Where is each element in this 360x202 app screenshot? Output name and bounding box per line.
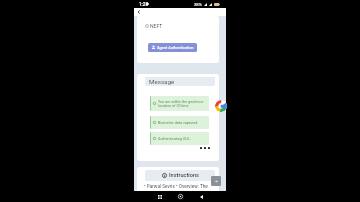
staticText: You are within the geofence	[158, 100, 204, 104]
button[interactable]: Scroll to top	[211, 176, 221, 186]
staticText: Biometric data captured	[158, 121, 198, 125]
staticText: Authenticating VLE...	[158, 137, 193, 141]
button[interactable]: You are within the geofence	[150, 96, 209, 111]
button[interactable]: Home	[176, 192, 185, 201]
staticText: 1:28	[139, 2, 149, 7]
staticText: NEFT	[150, 23, 163, 29]
staticText: • Parwal Sevrix • Overview: The	[144, 184, 208, 190]
button[interactable]: Back	[136, 9, 142, 15]
staticText: Instructions	[169, 172, 199, 179]
button[interactable]: NEFT	[145, 23, 163, 29]
button[interactable]: Instructions	[145, 170, 215, 181]
staticText: Agent Authentication	[157, 45, 194, 50]
button[interactable]: Agent Authentication	[148, 43, 197, 52]
staticText: Message	[149, 78, 175, 85]
button[interactable]: Back	[197, 192, 206, 201]
button[interactable]: Recent apps	[155, 192, 164, 201]
staticText: 38%	[194, 2, 202, 7]
button[interactable]: Authenticating VLE...	[150, 132, 209, 145]
button[interactable]: Biometric data captured	[150, 116, 209, 129]
staticText: location of 20 kms	[158, 104, 189, 108]
